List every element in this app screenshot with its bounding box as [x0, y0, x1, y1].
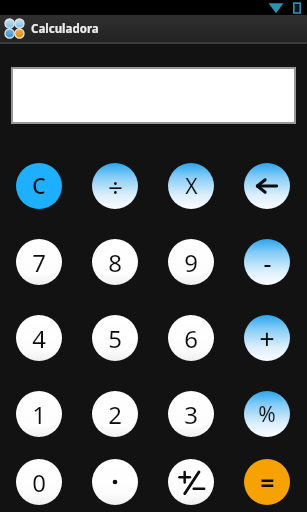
button[interactable]: - [244, 239, 290, 285]
staticText: 6 [184, 322, 198, 355]
staticText: C [32, 172, 46, 201]
button[interactable]: Calculadora [0, 15, 307, 42]
button[interactable]: 6 [168, 315, 214, 361]
button[interactable]: Change sign [168, 459, 214, 505]
staticText: = [260, 465, 275, 499]
button[interactable]: 0 [16, 459, 62, 505]
button[interactable]: Decimal point [92, 459, 138, 505]
staticText: ÷ [108, 169, 123, 204]
staticText: 8 [108, 246, 122, 279]
button[interactable]: 7 [16, 239, 62, 285]
button[interactable]: 9 [168, 239, 214, 285]
staticText: 9 [184, 246, 198, 279]
button[interactable]: 8 [92, 239, 138, 285]
staticText: X [185, 172, 198, 201]
button[interactable]: 3 [168, 391, 214, 437]
button[interactable]: 1 [16, 391, 62, 437]
staticText: 2 [108, 398, 122, 431]
staticText: 1 [32, 398, 46, 431]
button[interactable]: = [244, 459, 290, 505]
button[interactable]: % [244, 391, 290, 437]
button[interactable]: 5 [92, 315, 138, 361]
staticText: % [258, 400, 276, 429]
staticText: 0 [32, 466, 46, 499]
button[interactable]: + [244, 315, 290, 361]
staticText: - [263, 245, 272, 280]
staticText: 5 [108, 322, 122, 355]
button[interactable]: 4 [16, 315, 62, 361]
button[interactable]: 2 [92, 391, 138, 437]
staticText: + [259, 320, 275, 357]
button[interactable]: Backspace [244, 163, 290, 209]
button[interactable]: X [168, 163, 214, 209]
staticText: 3 [184, 398, 198, 431]
staticText: 4 [32, 322, 46, 355]
staticText: Calculadora [31, 21, 99, 37]
button[interactable]: C [16, 163, 62, 209]
staticText: 7 [32, 246, 46, 279]
button[interactable]: ÷ [92, 163, 138, 209]
